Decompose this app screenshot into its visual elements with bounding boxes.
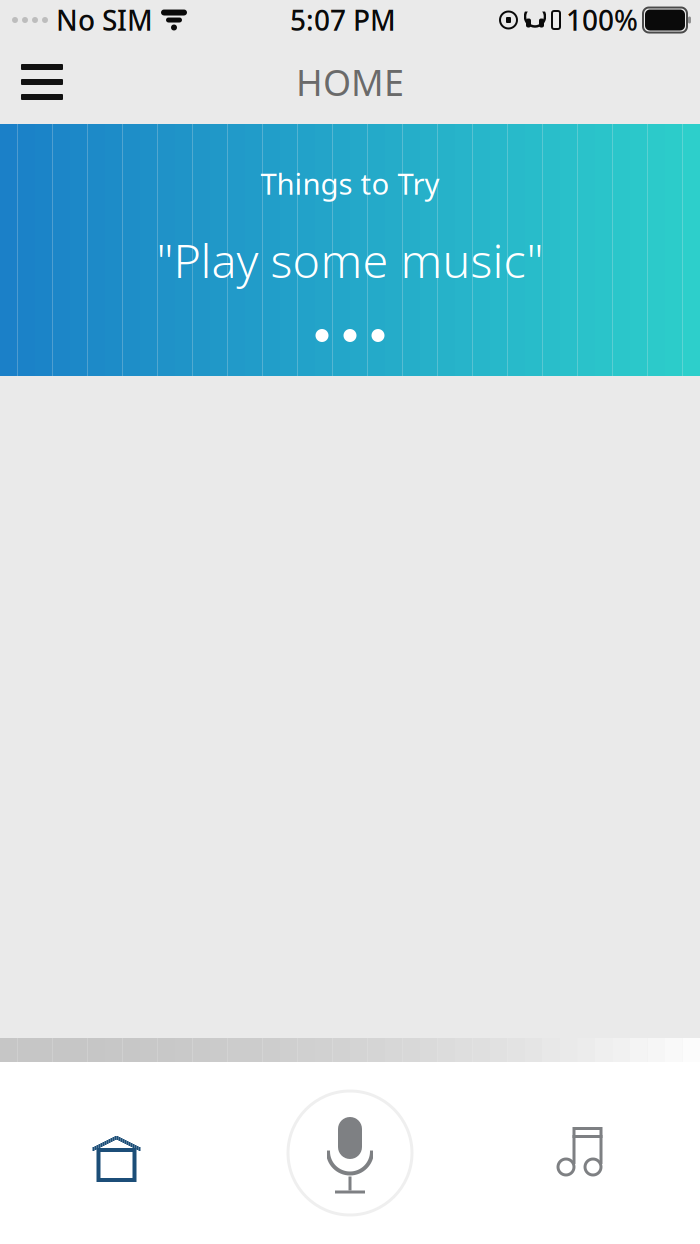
button[interactable]: Music (467, 1062, 700, 1244)
button[interactable]: Voice search (233, 1062, 467, 1244)
button[interactable]: Home (0, 1062, 233, 1244)
staticText: "Play some music" (156, 229, 543, 291)
button[interactable]: Menu (6, 52, 78, 112)
staticText: 5:07 PM (290, 1, 396, 39)
staticText: HOME (296, 58, 404, 106)
staticText: Things to Try (260, 164, 439, 203)
staticText: No SIM (56, 1, 153, 39)
staticText: 100% (566, 1, 638, 39)
